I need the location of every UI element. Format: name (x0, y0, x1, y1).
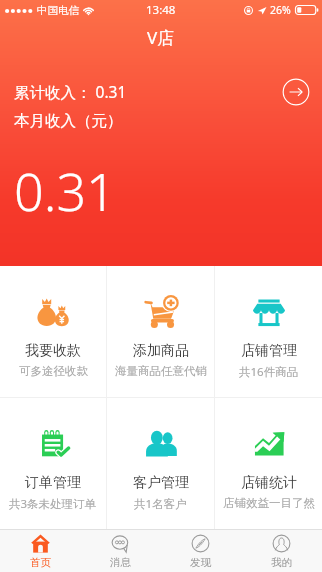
staticText: 客户管理 (133, 474, 189, 492)
staticText: 共16件商品 (239, 364, 299, 380)
button[interactable]: 首页 (0, 530, 80, 572)
button[interactable]: 店铺管理 (215, 266, 322, 397)
button[interactable]: 消息 (80, 530, 160, 572)
button[interactable]: 店铺统计 (215, 398, 322, 529)
button[interactable]: 我要收款 (0, 266, 106, 397)
staticText: 我的 (271, 556, 292, 569)
staticText: 共3条未处理订单 (9, 496, 97, 512)
staticText: 海量商品任意代销 (115, 364, 207, 378)
staticText: 0.31 (14, 155, 116, 226)
staticText: 累计收入： 0.31 (14, 81, 127, 102)
staticText: 首页 (30, 556, 51, 569)
staticText: 可多途径收款 (19, 364, 88, 378)
staticText: 共1名客户 (134, 496, 187, 512)
staticText: 26% (270, 3, 291, 17)
staticText: 店铺效益一目了然 (223, 496, 315, 510)
button[interactable]: 添加商品 (107, 266, 214, 397)
staticText: 店铺管理 (241, 342, 297, 360)
staticText: 13:48 (146, 2, 176, 18)
staticText: 订单管理 (25, 474, 81, 492)
button[interactable]: 客户管理 (107, 398, 214, 529)
staticText: V店 (147, 26, 175, 49)
staticText: 我要收款 (25, 342, 81, 360)
staticText: 发现 (190, 556, 211, 569)
staticText: 消息 (110, 556, 131, 569)
button[interactable]: 订单管理 (0, 398, 106, 529)
staticText: 本月收入（元） (14, 111, 123, 131)
staticText: 店铺统计 (241, 474, 297, 492)
button[interactable]: 发现 (160, 530, 241, 572)
button[interactable]: 查看收入明细 (282, 78, 310, 106)
staticText: 添加商品 (133, 342, 189, 360)
staticText: 中国电信 (37, 4, 79, 17)
button[interactable]: 我的 (241, 530, 322, 572)
